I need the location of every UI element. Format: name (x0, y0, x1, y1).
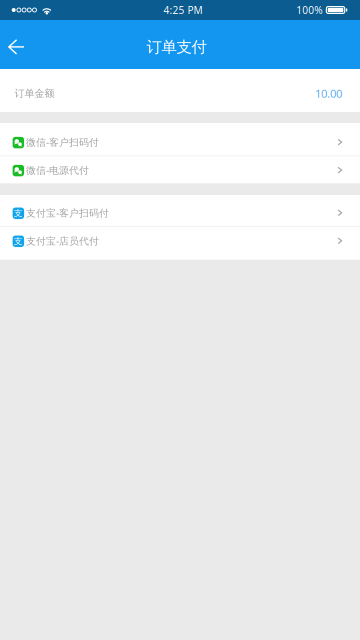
staticText: 微信-电源代付 (26, 163, 89, 177)
button[interactable]: 支 (0, 227, 360, 254)
staticText: 订单金额 (14, 87, 54, 100)
staticText: 4:25 PM (163, 3, 202, 17)
staticText: 支付宝-店员代付 (26, 234, 99, 247)
button[interactable]: 微信-电源代付 (0, 156, 360, 183)
staticText: 订单支付 (146, 37, 206, 57)
button[interactable]: 微信-客户扫码付 (0, 128, 360, 155)
staticText: 支 (14, 236, 23, 247)
staticText: 100% (296, 3, 322, 17)
staticText: 支付宝-客户扫码付 (26, 206, 109, 219)
staticText: 微信-客户扫码付 (26, 135, 99, 149)
staticText: 支 (14, 208, 23, 219)
button[interactable]: 支 (0, 199, 360, 226)
button[interactable]: Back (0, 20, 33, 69)
staticText: 10.00 (315, 86, 342, 101)
